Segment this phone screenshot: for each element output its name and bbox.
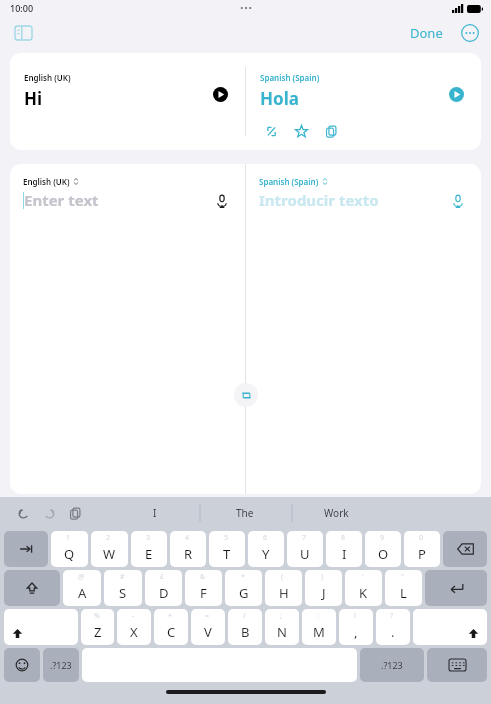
- staticText: Spanish (Spain): [260, 72, 320, 83]
- staticText: K: [359, 584, 368, 602]
- staticText: .?123: [381, 659, 403, 671]
- button[interactable]: Done: [404, 20, 449, 46]
- button[interactable]: Hide keyboard: [427, 648, 487, 682]
- button[interactable]: ?: [376, 609, 410, 645]
- staticText: M: [313, 623, 325, 641]
- button[interactable]: Play Spanish: [445, 83, 467, 105]
- staticText: Y: [262, 545, 270, 563]
- staticText: E: [145, 545, 153, 563]
- button[interactable]: 2: [91, 531, 128, 567]
- staticText: Q: [64, 545, 75, 563]
- button[interactable]: ": [385, 570, 422, 606]
- staticText: ?: [390, 611, 394, 621]
- staticText: ): [321, 572, 324, 582]
- button[interactable]: 4: [170, 531, 206, 567]
- staticText: #: [120, 572, 125, 582]
- staticText: W: [103, 545, 116, 563]
- staticText: B: [241, 623, 250, 641]
- button[interactable]: *: [225, 570, 262, 606]
- button[interactable]: 9: [365, 531, 401, 567]
- staticText: =: [205, 611, 210, 621]
- staticText: S: [119, 584, 127, 602]
- staticText: Hola: [260, 87, 299, 110]
- button[interactable]: ;: [265, 609, 299, 645]
- staticText: I: [153, 506, 157, 520]
- staticText: O: [378, 545, 389, 563]
- button[interactable]: Favourite: [290, 120, 312, 142]
- staticText: 3: [146, 533, 151, 543]
- staticText: P: [418, 545, 426, 563]
- button[interactable]: Sidebar: [8, 18, 38, 48]
- staticText: -: [132, 611, 135, 621]
- button[interactable]: I: [120, 497, 190, 529]
- button[interactable]: Copy: [320, 120, 342, 142]
- staticText: English (UK): [24, 72, 71, 83]
- staticText: ,: [354, 623, 358, 641]
- button[interactable]: +: [154, 609, 188, 645]
- button[interactable]: Numbers: [43, 648, 79, 682]
- button[interactable]: Work: [301, 497, 371, 529]
- button[interactable]: ': [345, 570, 382, 606]
- staticText: D: [159, 584, 169, 602]
- staticText: *: [241, 572, 245, 582]
- button[interactable]: Shift: [413, 609, 487, 645]
- button[interactable]: -: [117, 609, 151, 645]
- staticText: .?123: [50, 659, 72, 671]
- button[interactable]: Backspace: [443, 531, 487, 567]
- button[interactable]: @: [63, 570, 101, 606]
- button[interactable]: Shift: [4, 609, 78, 645]
- button[interactable]: /: [228, 609, 262, 645]
- button[interactable]: Numbers right: [360, 648, 424, 682]
- staticText: Work: [324, 506, 349, 520]
- button[interactable]: Play English: [209, 83, 231, 105]
- button[interactable]: Paste: [64, 502, 86, 524]
- button[interactable]: 0: [404, 531, 440, 567]
- button[interactable]: The: [210, 497, 280, 529]
- button[interactable]: (: [265, 570, 302, 606]
- button[interactable]: 3: [131, 531, 167, 567]
- button[interactable]: #: [104, 570, 142, 606]
- button[interactable]: £: [145, 570, 182, 606]
- button[interactable]: &: [185, 570, 222, 606]
- button[interactable]: Spanish (Spain): [259, 176, 328, 187]
- button[interactable]: More options: [457, 20, 483, 46]
- button[interactable]: 7: [287, 531, 323, 567]
- button[interactable]: !: [339, 609, 373, 645]
- staticText: Done: [410, 24, 443, 42]
- button[interactable]: Return: [425, 570, 487, 606]
- button[interactable]: Undo: [12, 502, 34, 524]
- button[interactable]: 5: [209, 531, 245, 567]
- staticText: A: [78, 584, 87, 602]
- staticText: (: [281, 572, 284, 582]
- button[interactable]: Swap languages: [234, 383, 258, 407]
- button[interactable]: Dictate Spanish: [447, 190, 469, 212]
- staticText: X: [130, 623, 138, 641]
- button[interactable]: =: [191, 609, 225, 645]
- staticText: ;: [280, 611, 282, 621]
- staticText: V: [204, 623, 212, 641]
- staticText: L: [400, 584, 407, 602]
- button[interactable]: 1: [51, 531, 88, 567]
- button[interactable]: Redo: [38, 502, 60, 524]
- staticText: £: [160, 572, 165, 582]
- button[interactable]: Tab: [4, 531, 48, 567]
- button[interactable]: English (UK): [23, 176, 79, 187]
- staticText: C: [167, 623, 176, 641]
- button[interactable]: 8: [326, 531, 362, 567]
- button[interactable]: Caps lock: [4, 570, 60, 606]
- button[interactable]: :: [302, 609, 336, 645]
- button[interactable]: 6: [248, 531, 284, 567]
- button[interactable]: Expand: [260, 120, 282, 142]
- staticText: 10:00: [10, 2, 34, 14]
- staticText: 4: [185, 533, 190, 543]
- staticText: Z: [94, 623, 102, 641]
- staticText: 5: [224, 533, 229, 543]
- staticText: %: [94, 611, 100, 621]
- staticText: .: [391, 623, 395, 641]
- button[interactable]: Emoji: [4, 648, 40, 682]
- button[interactable]: Dictate English: [211, 190, 233, 212]
- button[interactable]: ): [305, 570, 342, 606]
- staticText: J: [322, 584, 326, 602]
- button[interactable]: %: [81, 609, 114, 645]
